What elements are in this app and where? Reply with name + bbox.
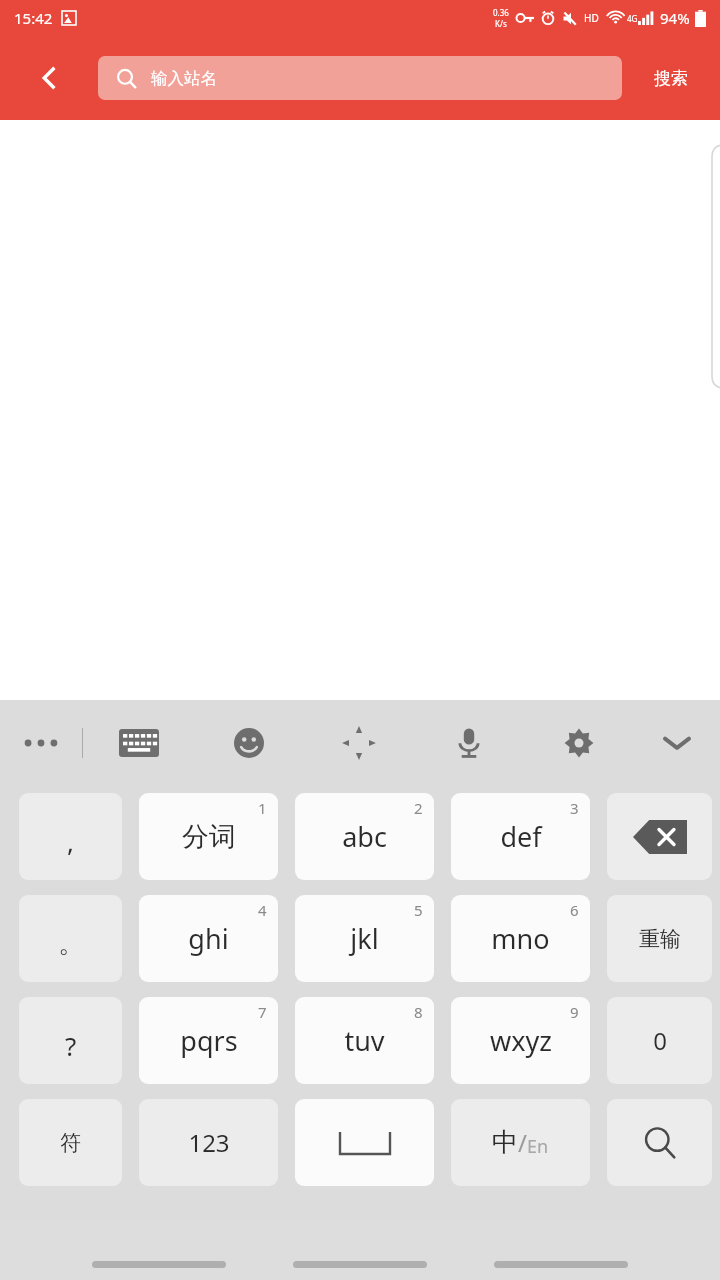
button[interactable]: 123 xyxy=(139,1099,278,1186)
button[interactable]: Recents xyxy=(92,1261,226,1268)
staticText: 94% xyxy=(660,8,690,28)
button[interactable]: ? xyxy=(19,997,122,1084)
staticText: def xyxy=(500,818,542,855)
staticText: En xyxy=(527,1134,549,1159)
staticText: 7 xyxy=(258,1002,267,1022)
button[interactable]: Hide keyboard xyxy=(634,700,720,785)
button[interactable]: 。 xyxy=(19,895,122,982)
button[interactable]: def xyxy=(451,793,590,880)
button[interactable]: Back xyxy=(494,1261,628,1268)
button[interactable]: Back xyxy=(0,36,98,120)
button[interactable]: Home xyxy=(293,1261,427,1268)
button[interactable]: Search xyxy=(607,1099,712,1186)
button[interactable]: pqrs xyxy=(139,997,278,1084)
staticText: 1 xyxy=(258,798,267,818)
button[interactable]: Emoji xyxy=(194,700,304,785)
staticText: abc xyxy=(342,818,387,855)
staticText: 0 xyxy=(653,1024,667,1057)
button[interactable]: abc xyxy=(295,793,434,880)
button[interactable]: Backspace xyxy=(607,793,712,880)
button[interactable]: Space xyxy=(295,1099,434,1186)
staticText: K/s xyxy=(495,18,507,29)
button[interactable]: 搜索 xyxy=(622,36,720,120)
button[interactable]: jkl xyxy=(295,895,434,982)
button[interactable]: 分词 xyxy=(139,793,278,880)
staticText: 9 xyxy=(570,1002,579,1022)
staticText: jkl xyxy=(350,920,379,957)
button[interactable]: 输入站名 xyxy=(98,56,622,100)
staticText: 0.36 xyxy=(493,7,509,18)
staticText: 15:42 xyxy=(14,8,53,28)
button[interactable]: Settings xyxy=(524,700,634,785)
staticText: / xyxy=(518,1126,527,1159)
staticText: 4 xyxy=(258,900,267,920)
staticText: ghi xyxy=(188,920,229,957)
button[interactable]: tuv xyxy=(295,997,434,1084)
staticText: 。 xyxy=(58,927,84,960)
button[interactable]: ghi xyxy=(139,895,278,982)
staticText: 3 xyxy=(570,798,579,818)
staticText: 分词 xyxy=(182,820,236,854)
staticText: 4G xyxy=(627,13,638,24)
staticText: 输入站名 xyxy=(151,68,217,89)
staticText: tuv xyxy=(344,1022,385,1059)
staticText: , xyxy=(67,824,74,859)
staticText: 5 xyxy=(414,900,423,920)
staticText: 重输 xyxy=(639,926,681,952)
button[interactable]: 符 xyxy=(19,1099,122,1186)
button[interactable]: wxyz xyxy=(451,997,590,1084)
staticText: mno xyxy=(491,920,550,957)
button[interactable]: Move cursor xyxy=(304,700,414,785)
staticText: 8 xyxy=(414,1002,423,1022)
staticText: 符 xyxy=(60,1130,81,1156)
button[interactable]: Switch language xyxy=(451,1099,590,1186)
staticText: wxyz xyxy=(490,1022,552,1059)
button[interactable]: 重输 xyxy=(607,895,712,982)
button[interactable]: , xyxy=(19,793,122,880)
staticText: 2 xyxy=(414,798,423,818)
staticText: HD xyxy=(584,11,599,25)
staticText: 6 xyxy=(570,900,579,920)
button[interactable]: mno xyxy=(451,895,590,982)
button[interactable]: Voice input xyxy=(414,700,524,785)
staticText: 123 xyxy=(188,1126,230,1159)
staticText: ? xyxy=(65,1028,77,1063)
staticText: pqrs xyxy=(180,1022,238,1059)
button[interactable]: 0 xyxy=(607,997,712,1084)
button[interactable]: More options xyxy=(0,700,82,785)
button[interactable]: Keyboard layout xyxy=(83,700,194,785)
staticText: 中 xyxy=(492,1126,518,1159)
staticText: 搜索 xyxy=(654,68,688,89)
